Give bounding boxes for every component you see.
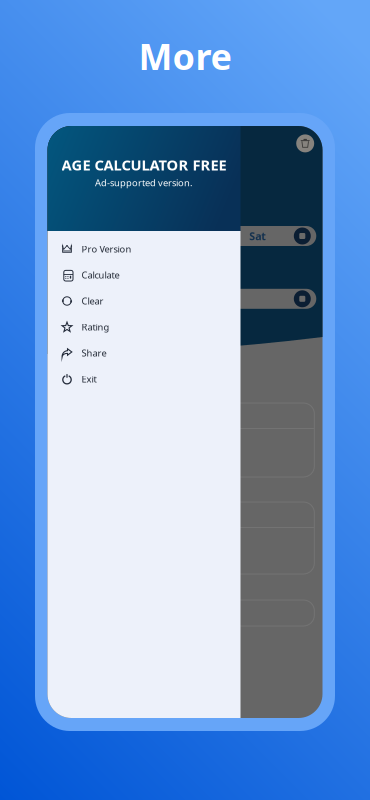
button[interactable]: Pro Version [47,236,240,262]
button[interactable]: Calculate [47,262,240,288]
staticText: Rating [81,321,109,333]
staticText: Share [81,347,106,359]
button[interactable]: Exit [47,366,240,392]
button[interactable]: Delete [294,132,316,154]
staticText: Pro Version [81,243,131,255]
staticText: AGE CALCULATOR FREE [61,155,226,174]
staticText: Calculate [81,269,119,281]
staticText: Clear [81,295,103,307]
staticText: Ad-supported version. [95,176,193,189]
button[interactable]: Clear [47,288,240,314]
staticText: Exit [81,373,96,385]
button[interactable]: Rating [47,314,240,340]
staticText: More [138,32,231,80]
button[interactable]: Share [47,340,240,366]
staticText: Sat [249,229,266,243]
